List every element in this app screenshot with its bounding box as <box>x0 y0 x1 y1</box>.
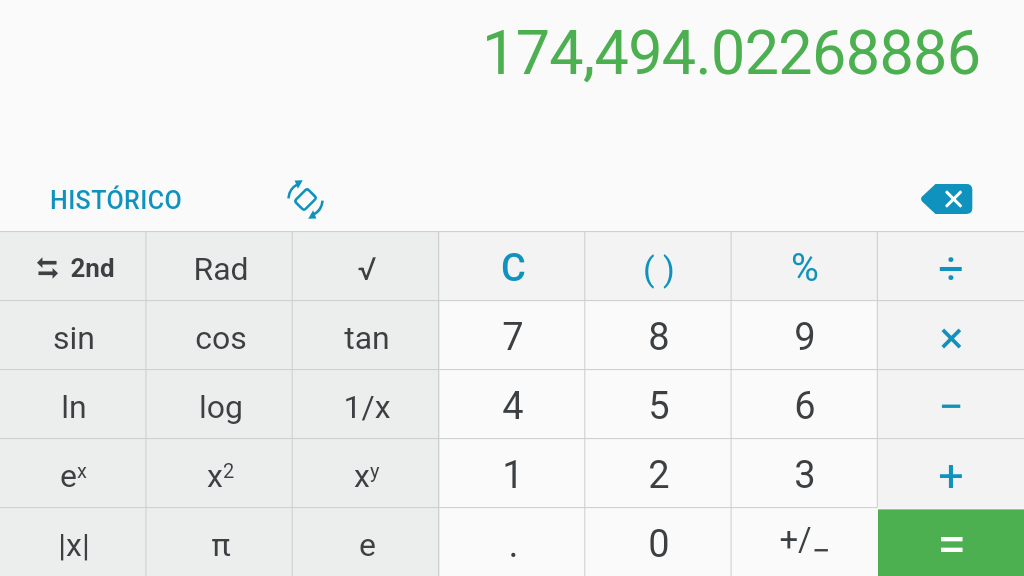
button[interactable]: 1 <box>440 438 586 507</box>
button[interactable]: × <box>878 300 1024 369</box>
staticText: tan <box>344 319 390 357</box>
staticText: C <box>501 246 526 291</box>
staticText: ÷ <box>938 242 964 295</box>
staticText: Rad <box>193 250 249 288</box>
staticText: 6 <box>794 384 816 429</box>
staticText: 9 <box>794 315 816 360</box>
button[interactable]: xy <box>294 438 440 507</box>
staticText: log <box>199 388 243 426</box>
staticText: = <box>937 514 966 575</box>
staticText: + <box>938 449 964 502</box>
button[interactable]: ln <box>0 369 147 438</box>
staticText: 2 <box>648 453 670 498</box>
staticText: |x| <box>58 526 90 564</box>
staticText: e <box>359 526 376 564</box>
staticText: 0 <box>648 522 670 567</box>
button[interactable]: x2 <box>147 438 294 507</box>
button[interactable]: Backspace <box>913 166 979 232</box>
staticText: 2nd <box>70 253 115 283</box>
button[interactable]: 2nd <box>0 231 147 300</box>
button[interactable]: √ <box>294 231 440 300</box>
button[interactable]: HISTÓRICO <box>34 176 199 225</box>
button[interactable]: log <box>147 369 294 438</box>
staticText: ex <box>60 457 87 495</box>
button[interactable]: 2 <box>586 438 732 507</box>
staticText: 3 <box>794 453 816 498</box>
button[interactable]: tan <box>294 300 440 369</box>
staticText: ( ) <box>643 249 675 289</box>
button[interactable]: 8 <box>586 300 732 369</box>
button[interactable]: +/− <box>732 507 878 576</box>
button[interactable]: 6 <box>732 369 878 438</box>
button[interactable]: 4 <box>440 369 586 438</box>
button[interactable]: 5 <box>586 369 732 438</box>
staticText: 4 <box>502 384 524 429</box>
button[interactable]: 3 <box>732 438 878 507</box>
button[interactable]: − <box>878 369 1024 438</box>
button[interactable]: π <box>147 507 294 576</box>
staticText: 1 <box>502 453 524 498</box>
button[interactable]: sin <box>0 300 147 369</box>
staticText: +/− <box>779 520 831 570</box>
staticText: . <box>508 522 519 567</box>
button[interactable]: 9 <box>732 300 878 369</box>
staticText: 8 <box>648 315 670 360</box>
staticText: √ <box>357 250 377 288</box>
staticText: 7 <box>502 315 524 360</box>
staticText: 5 <box>648 384 670 429</box>
button[interactable]: % <box>732 231 878 300</box>
button[interactable]: . <box>440 507 586 576</box>
staticText: x2 <box>207 457 235 495</box>
button[interactable]: ex <box>0 438 147 507</box>
staticText: cos <box>195 319 247 357</box>
staticText: % <box>791 246 819 291</box>
button[interactable]: + <box>878 438 1024 507</box>
staticText: HISTÓRICO <box>50 186 183 215</box>
staticText: 174,494.02268886 <box>482 17 981 88</box>
staticText: sin <box>53 319 95 357</box>
button[interactable]: cos <box>147 300 294 369</box>
button[interactable]: 1/x <box>294 369 440 438</box>
button[interactable]: e <box>294 507 440 576</box>
staticText: 1/x <box>343 388 391 426</box>
staticText: π <box>211 526 231 564</box>
button[interactable]: |x| <box>0 507 147 576</box>
button[interactable]: 7 <box>440 300 586 369</box>
staticText: × <box>939 311 964 364</box>
button[interactable]: Rotate screen <box>277 171 334 228</box>
button[interactable]: = <box>878 507 1024 576</box>
staticText: ln <box>61 388 87 426</box>
button[interactable]: ( ) <box>586 231 732 300</box>
button[interactable]: 0 <box>586 507 732 576</box>
button[interactable]: Rad <box>147 231 294 300</box>
staticText: − <box>938 380 964 433</box>
button[interactable]: ÷ <box>878 231 1024 300</box>
staticText: xy <box>354 457 380 495</box>
button[interactable]: C <box>440 231 586 300</box>
